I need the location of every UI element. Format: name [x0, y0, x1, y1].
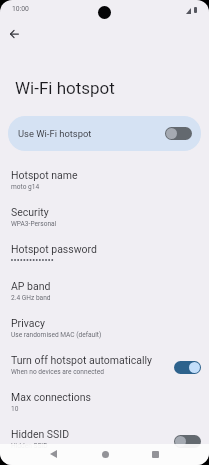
staticText: 10:00	[12, 5, 29, 13]
staticText: AP band	[11, 280, 51, 292]
staticText: Security	[11, 206, 49, 218]
button[interactable]: Switch off	[174, 435, 201, 448]
staticText: Use Wi-Fi hotspot	[18, 128, 92, 139]
staticText: Hidden SSID	[11, 442, 48, 450]
staticText: Wi-Fi hotspot	[15, 78, 115, 98]
button[interactable]: Back	[43, 444, 63, 464]
staticText: moto g14	[11, 183, 40, 191]
staticText: Hotspot name	[11, 169, 78, 181]
staticText: 2.4 GHz band	[11, 294, 51, 302]
staticText: Use randomised MAC (default)	[11, 331, 102, 339]
staticText: 10	[11, 405, 19, 413]
button[interactable]: Max connections	[0, 387, 209, 424]
staticText: When no devices are connected	[11, 368, 104, 376]
staticText: Turn off hotspot automatically	[11, 354, 152, 366]
button[interactable]: Switch on	[174, 361, 201, 374]
button[interactable]: Hotspot name	[0, 165, 209, 202]
button[interactable]: AP band	[0, 276, 209, 313]
button[interactable]: Security	[0, 202, 209, 239]
button[interactable]: Home	[95, 444, 115, 464]
staticText: Hidden SSID	[11, 428, 70, 440]
staticText: WPA3-Personal	[11, 220, 57, 228]
button[interactable]: Turn off hotspot automatically	[0, 350, 209, 387]
button[interactable]: Back	[2, 22, 26, 46]
button[interactable]: Use Wi-Fi hotspot	[8, 116, 201, 151]
button[interactable]: Recents	[145, 444, 165, 464]
button[interactable]: Hidden SSID	[0, 424, 209, 461]
button[interactable]: Switch off	[165, 127, 192, 140]
staticText: Hotspot password	[11, 243, 97, 255]
button[interactable]: Hotspot password	[0, 239, 209, 276]
staticText: Max connections	[11, 391, 92, 403]
staticText: Privacy	[11, 317, 45, 329]
button[interactable]: Privacy	[0, 313, 209, 350]
